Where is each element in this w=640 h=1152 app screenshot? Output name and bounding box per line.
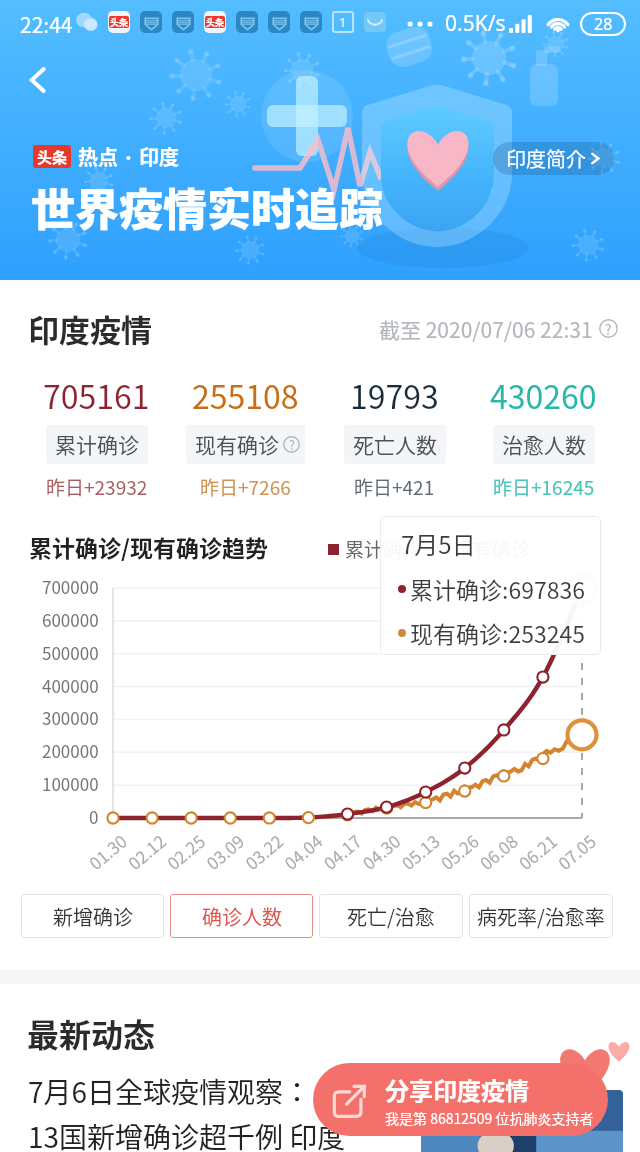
staticText: 我是第 86812509 位抗肺炎支持者 — [385, 1108, 594, 1128]
staticText: 705161 — [43, 372, 150, 418]
staticText: 累计确诊 — [345, 535, 422, 563]
staticText: 昨日+421 — [354, 473, 435, 501]
button[interactable]: 19793 — [320, 372, 469, 501]
button[interactable]: 死亡/治愈 — [319, 894, 463, 938]
staticText: 新增确诊 — [53, 902, 133, 931]
staticText: 100000 — [42, 771, 99, 796]
staticText: 现有确诊 — [195, 429, 279, 459]
staticText: 头条 — [206, 16, 225, 28]
staticText: ? — [289, 436, 295, 453]
staticText: 现有确诊 — [454, 535, 531, 563]
button[interactable]: 病死率/治愈率 — [469, 894, 613, 938]
button[interactable]: 印度简介 — [493, 142, 614, 175]
button[interactable]: 累计确诊 — [328, 535, 422, 563]
staticText: 累计确诊:697836 — [410, 572, 585, 605]
staticText: 最新动态 — [27, 1010, 156, 1056]
staticText: 病死率/治愈率 — [477, 902, 605, 931]
staticText: 截至 2020/07/06 22:31 — [379, 314, 593, 344]
button[interactable]: 255108 — [171, 372, 320, 501]
staticText: 分享印度疫情 — [385, 1072, 529, 1107]
staticText: 热点 · 印度 — [78, 142, 179, 171]
staticText: 400000 — [42, 673, 99, 698]
staticText: 昨日+7266 — [200, 473, 291, 501]
staticText: 700000 — [42, 574, 99, 599]
staticText: 死亡/治愈 — [347, 902, 435, 931]
button[interactable]: 分享印度疫情 — [313, 1063, 608, 1136]
staticText: 7月5日 — [401, 526, 476, 561]
staticText: 累计确诊/现有确诊趋势 — [29, 530, 268, 563]
staticText: 500000 — [42, 640, 99, 665]
staticText: 印度简介 — [506, 144, 586, 173]
staticText: 昨日+23932 — [46, 473, 148, 501]
staticText: 头条 — [37, 146, 68, 168]
button[interactable]: 现有确诊 — [437, 535, 531, 563]
staticText: 300000 — [42, 705, 99, 730]
staticText: 累计确诊 — [55, 429, 139, 459]
staticText: 治愈人数 — [502, 429, 586, 459]
staticText: 28 — [594, 13, 613, 35]
staticText: 0.5K/s — [445, 9, 506, 38]
staticText: 7月6日全球疫情观察： 13国新增确诊超千例 印度 — [28, 1071, 346, 1152]
staticText: 200000 — [42, 738, 99, 763]
staticText: 确诊人数 — [202, 902, 282, 931]
staticText: 死亡人数 — [353, 429, 437, 459]
button[interactable]: 430260 — [469, 372, 618, 501]
button[interactable]: 新增确诊 — [21, 894, 164, 938]
staticText: 印度疫情 — [28, 306, 152, 351]
button[interactable]: 705161 — [22, 372, 171, 501]
staticText: 0 — [89, 804, 99, 829]
staticText: ? — [605, 319, 612, 338]
staticText: 600000 — [42, 607, 99, 632]
staticText: 1 — [339, 13, 347, 31]
staticText: 世界疫情实时追踪 — [31, 175, 383, 239]
staticText: 头条 — [110, 16, 129, 28]
button[interactable]: 确诊人数 — [170, 894, 313, 938]
staticText: 430260 — [490, 372, 597, 418]
staticText: 昨日+16245 — [493, 473, 595, 501]
staticText: 255108 — [192, 372, 299, 418]
staticText: 22:44 — [20, 9, 73, 39]
staticText: 19793 — [350, 372, 439, 418]
staticText: 现有确诊:253245 — [410, 616, 585, 649]
button[interactable]: Back — [12, 54, 64, 106]
